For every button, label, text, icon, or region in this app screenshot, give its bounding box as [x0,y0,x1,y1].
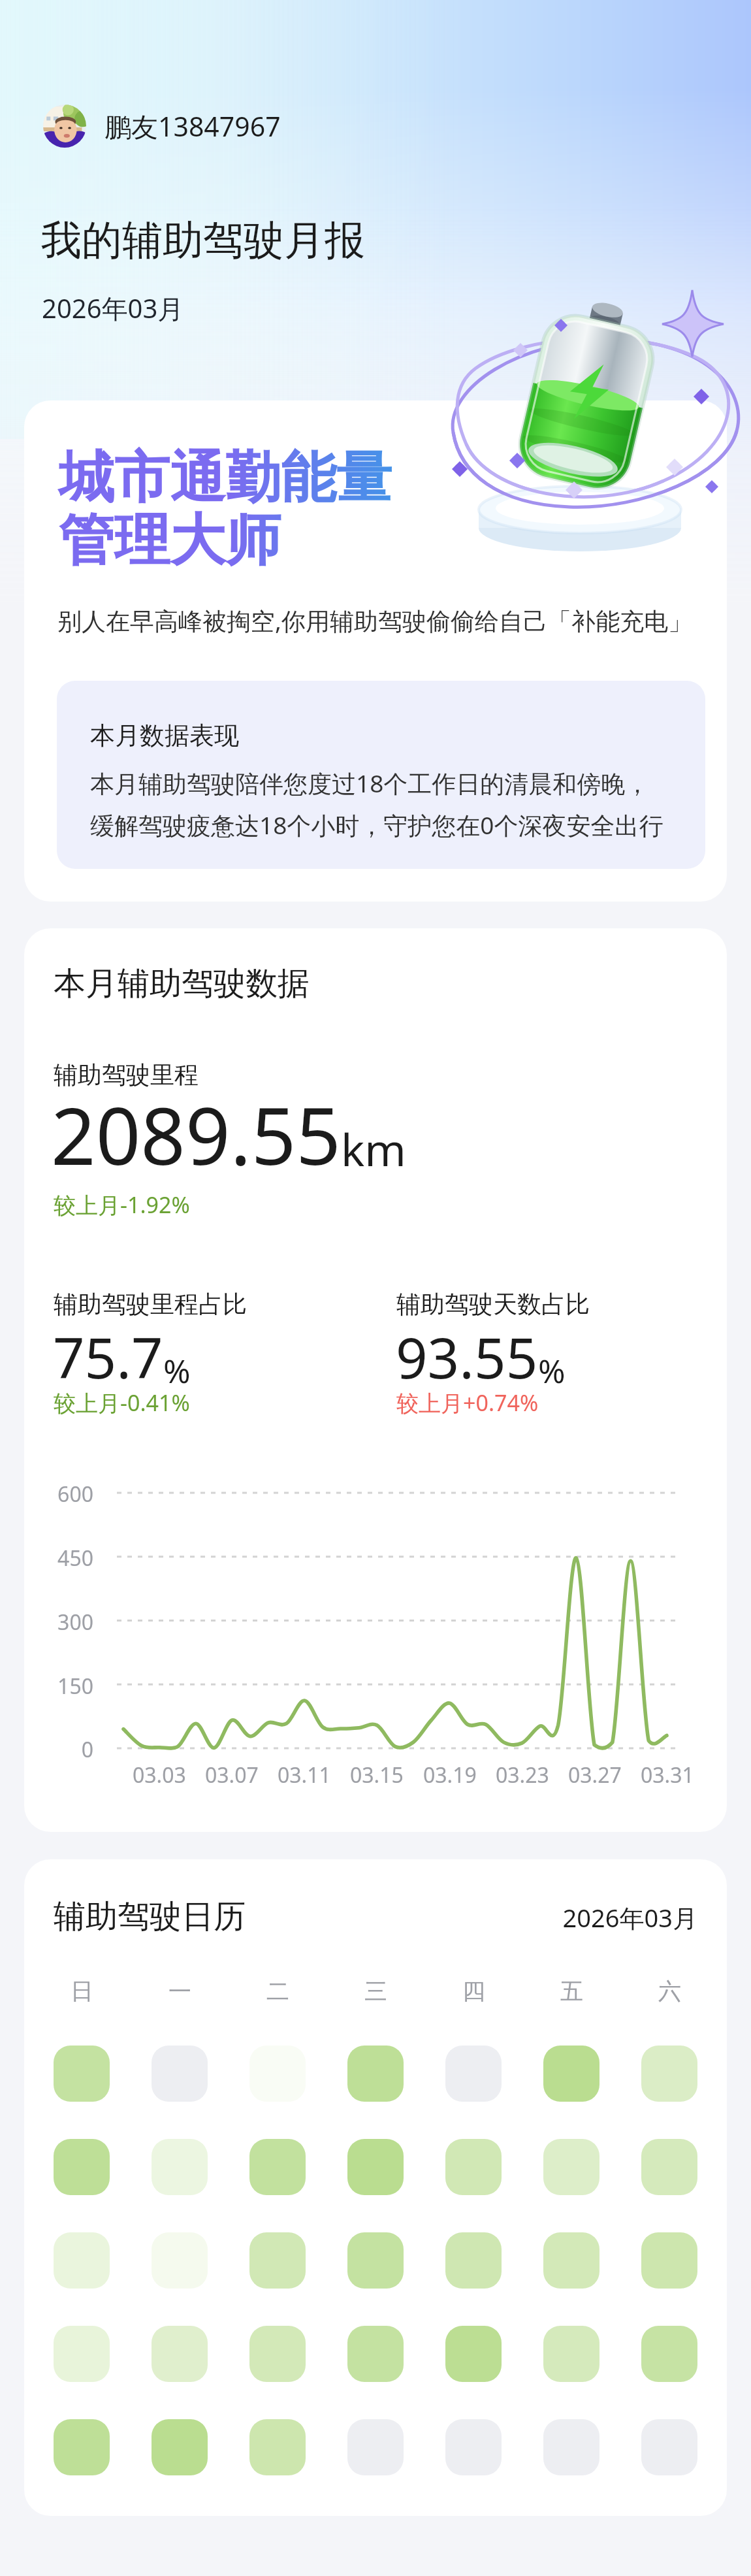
staticText: 辅助驾驶里程 [54,1060,199,1090]
staticText: 较上月+0.74% [396,1388,539,1418]
staticText: 辅助驾驶日历 [54,1897,246,1937]
staticText: 别人在早高峰被掏空,你用辅助驾驶偷偷给自己「补能充电」 [57,604,692,637]
staticText: 辅助驾驶天数占比 [396,1289,590,1320]
button[interactable] [54,2419,110,2475]
staticText: 五 [560,1977,583,2006]
staticText: 2026年03月 [24,1900,697,1934]
button[interactable] [347,2232,404,2289]
button[interactable] [641,2046,697,2102]
staticText: 二 [266,1977,289,2006]
staticText: 0 [24,1735,93,1764]
staticText: 本月辅助驾驶数据 [54,964,310,1004]
staticText: 03.03 [133,1761,186,1789]
button[interactable] [152,2326,208,2382]
button[interactable] [54,2326,110,2382]
staticText: 93.55 [396,1319,538,1395]
button[interactable] [445,2046,502,2102]
staticText: 四 [462,1977,485,2006]
button[interactable] [543,2419,599,2475]
staticText: 300 [24,1608,93,1637]
staticText: 2026年03月 [42,290,184,326]
button[interactable] [543,2326,599,2382]
staticText: 03.31 [641,1761,694,1789]
staticText: 六 [658,1977,681,2006]
button[interactable]: 用户头像 [43,105,281,148]
button[interactable] [641,2326,697,2382]
button[interactable] [641,2232,697,2289]
staticText: 鹏友13847967 [104,108,281,144]
button[interactable] [543,2139,599,2195]
staticText: 450 [24,1544,93,1573]
staticText: 日 [71,1977,93,2006]
button[interactable] [641,2419,697,2475]
staticText: 03.07 [205,1761,259,1789]
button[interactable] [641,2139,697,2195]
staticText: km [341,1118,406,1179]
other: 用户头像 [43,105,86,148]
button[interactable] [543,2232,599,2289]
button[interactable] [445,2419,502,2475]
button[interactable] [152,2232,208,2289]
staticText: 本月辅助驾驶陪伴您度过18个工作日的清晨和傍晚， 缓解驾驶疲惫达18个小时，守护… [90,766,663,841]
button[interactable] [347,2046,404,2102]
staticText: 03.11 [278,1761,331,1789]
staticText: 75.7 [53,1319,163,1395]
staticText: 三 [364,1977,387,2006]
staticText: 03.27 [568,1761,622,1789]
staticText: 较上月-1.92% [54,1190,190,1220]
staticText: % [538,1348,566,1393]
staticText: 03.15 [350,1761,404,1789]
staticText: 一 [168,1977,191,2006]
staticText: 辅助驾驶里程占比 [54,1289,247,1320]
button[interactable] [249,2232,306,2289]
button[interactable] [347,2139,404,2195]
button[interactable] [249,2419,306,2475]
button[interactable] [347,2419,404,2475]
staticText: 03.23 [496,1761,549,1789]
staticText: 我的辅助驾驶月报 [41,215,365,266]
button[interactable] [152,2419,208,2475]
button[interactable] [347,2326,404,2382]
button[interactable] [445,2139,502,2195]
staticText: 较上月-0.41% [54,1388,190,1418]
staticText: 03.19 [423,1761,477,1789]
button[interactable] [249,2326,306,2382]
staticText: 城市通勤能量 管理大师 [59,443,392,576]
button[interactable] [543,2046,599,2102]
staticText: 2089.55 [51,1081,341,1188]
button[interactable] [152,2139,208,2195]
staticText: 150 [24,1672,93,1701]
button[interactable] [54,2046,110,2102]
button[interactable] [445,2232,502,2289]
staticText: 本月数据表现 [90,720,239,751]
staticText: % [163,1348,191,1393]
button[interactable] [54,2139,110,2195]
button[interactable] [249,2139,306,2195]
staticText: 600 [24,1480,93,1508]
button[interactable] [54,2232,110,2289]
button[interactable] [445,2326,502,2382]
button[interactable] [152,2046,208,2102]
